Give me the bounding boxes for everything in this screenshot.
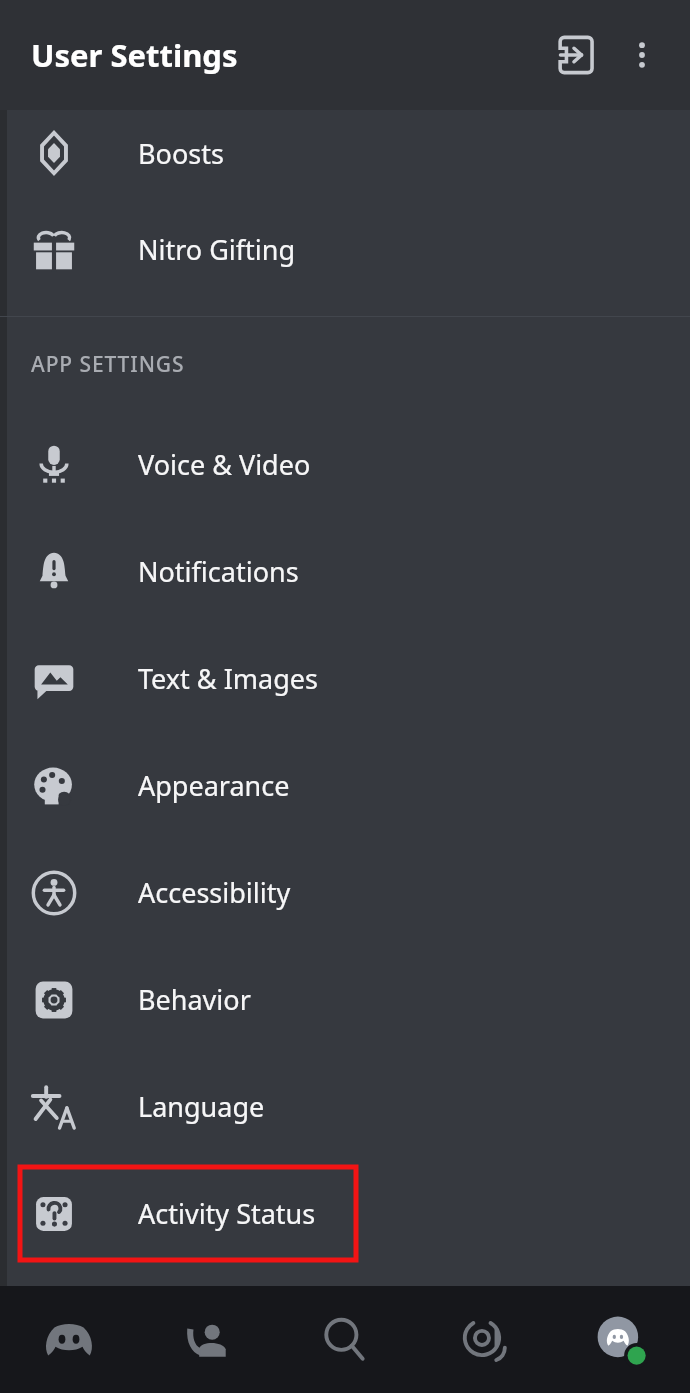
staticText: Language bbox=[138, 1088, 265, 1125]
staticText: APP SETTINGS bbox=[31, 350, 185, 379]
staticText: Notifications bbox=[138, 553, 299, 590]
button[interactable]: Notifications bbox=[0, 518, 690, 625]
button[interactable]: Activity Status bbox=[0, 1160, 690, 1267]
button[interactable]: Behavior bbox=[0, 946, 690, 1053]
staticText: Behavior bbox=[138, 981, 251, 1018]
button[interactable]: Voice & Video bbox=[0, 411, 690, 518]
staticText: Activity Status bbox=[138, 1195, 316, 1232]
staticText: Nitro Gifting bbox=[138, 231, 296, 268]
button[interactable]: Home bbox=[0, 1286, 138, 1393]
staticText: Boosts bbox=[138, 135, 224, 172]
staticText: Appearance bbox=[138, 767, 290, 804]
staticText: User Settings bbox=[31, 34, 238, 76]
button[interactable]: Search bbox=[276, 1286, 414, 1393]
button[interactable]: Log Out bbox=[538, 19, 610, 91]
staticText: Accessibility bbox=[138, 874, 291, 911]
button[interactable]: Accessibility bbox=[0, 839, 690, 946]
button[interactable]: Mentions bbox=[414, 1286, 552, 1393]
button[interactable]: Friends bbox=[138, 1286, 276, 1393]
button[interactable]: Appearance bbox=[0, 732, 690, 839]
button[interactable]: Language bbox=[0, 1053, 690, 1160]
button[interactable]: Nitro Gifting bbox=[0, 196, 690, 303]
button[interactable]: Boosts bbox=[0, 110, 690, 196]
button[interactable]: Text & Images bbox=[0, 625, 690, 732]
staticText: Voice & Video bbox=[138, 446, 311, 483]
staticText: Text & Images bbox=[138, 660, 318, 697]
button[interactable]: More options bbox=[610, 23, 674, 87]
button[interactable]: You bbox=[552, 1286, 690, 1393]
